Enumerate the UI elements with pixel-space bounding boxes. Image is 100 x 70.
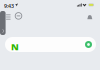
button[interactable]: List — [5, 13, 12, 21]
button[interactable]: Notifications — [87, 15, 93, 21]
button[interactable]: Address bar — [5, 37, 96, 52]
staticText: N — [11, 40, 19, 53]
button[interactable]: Block content — [15, 12, 22, 19]
staticText: 9:43 — [4, 2, 14, 9]
button[interactable]: Open sidebar — [0, 11, 6, 35]
